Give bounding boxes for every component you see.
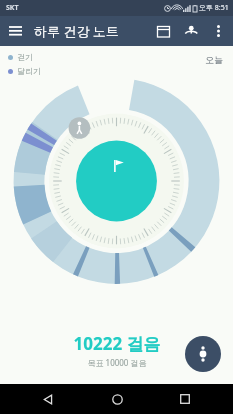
staticText: 목표 10000 걸음 <box>87 357 147 368</box>
button[interactable]: Location <box>177 17 205 45</box>
staticText: 달리기 <box>17 66 41 76</box>
button[interactable]: 달리기 <box>8 66 41 76</box>
staticText: SKT <box>6 3 19 13</box>
button[interactable]: Home <box>97 384 137 414</box>
staticText: 오후 8:51 <box>199 3 229 13</box>
button[interactable]: Back <box>28 384 68 414</box>
button[interactable]: Menu <box>0 16 30 46</box>
staticText: 10222 걸음 <box>73 332 161 355</box>
button[interactable]: 오늘 <box>203 52 225 67</box>
button[interactable]: More options <box>205 18 231 44</box>
staticText: 하루 건강 노트 <box>34 22 119 40</box>
button[interactable]: Calendar <box>149 17 177 45</box>
button[interactable]: 걷기 <box>8 52 33 62</box>
staticText: 걷기 <box>17 52 33 62</box>
staticText: 오늘 <box>205 54 223 65</box>
button[interactable]: Recents <box>165 384 205 414</box>
button[interactable]: More actions <box>185 336 221 372</box>
